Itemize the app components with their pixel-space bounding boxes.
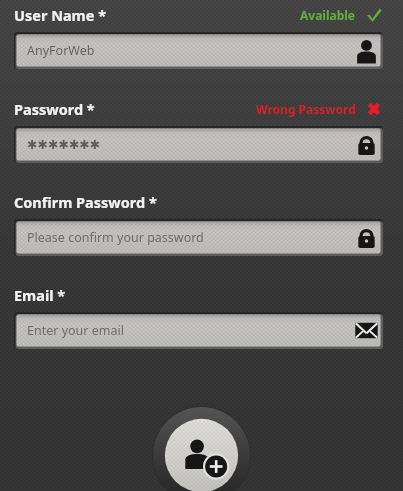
button[interactable]: Please confirm your password — [14, 219, 383, 256]
staticText: Email * — [14, 285, 66, 305]
button[interactable]: Add user — [152, 406, 251, 491]
staticText: User Name * — [14, 5, 107, 25]
staticText: Please confirm your password — [27, 229, 204, 246]
staticText: Enter your email — [27, 322, 124, 339]
staticText: AnyForWeb — [27, 42, 95, 59]
staticText: Confirm Password * — [14, 192, 157, 212]
button[interactable]: Enter your email — [14, 312, 383, 349]
button[interactable]: AnyForWeb — [14, 32, 383, 69]
staticText: ✱✱✱✱✱✱✱ — [27, 137, 101, 152]
button[interactable]: ✱✱✱✱✱✱✱ — [14, 126, 383, 163]
staticText: Password * — [14, 99, 95, 119]
staticText: Available — [300, 7, 356, 23]
staticText: Wrong Password — [256, 101, 356, 117]
